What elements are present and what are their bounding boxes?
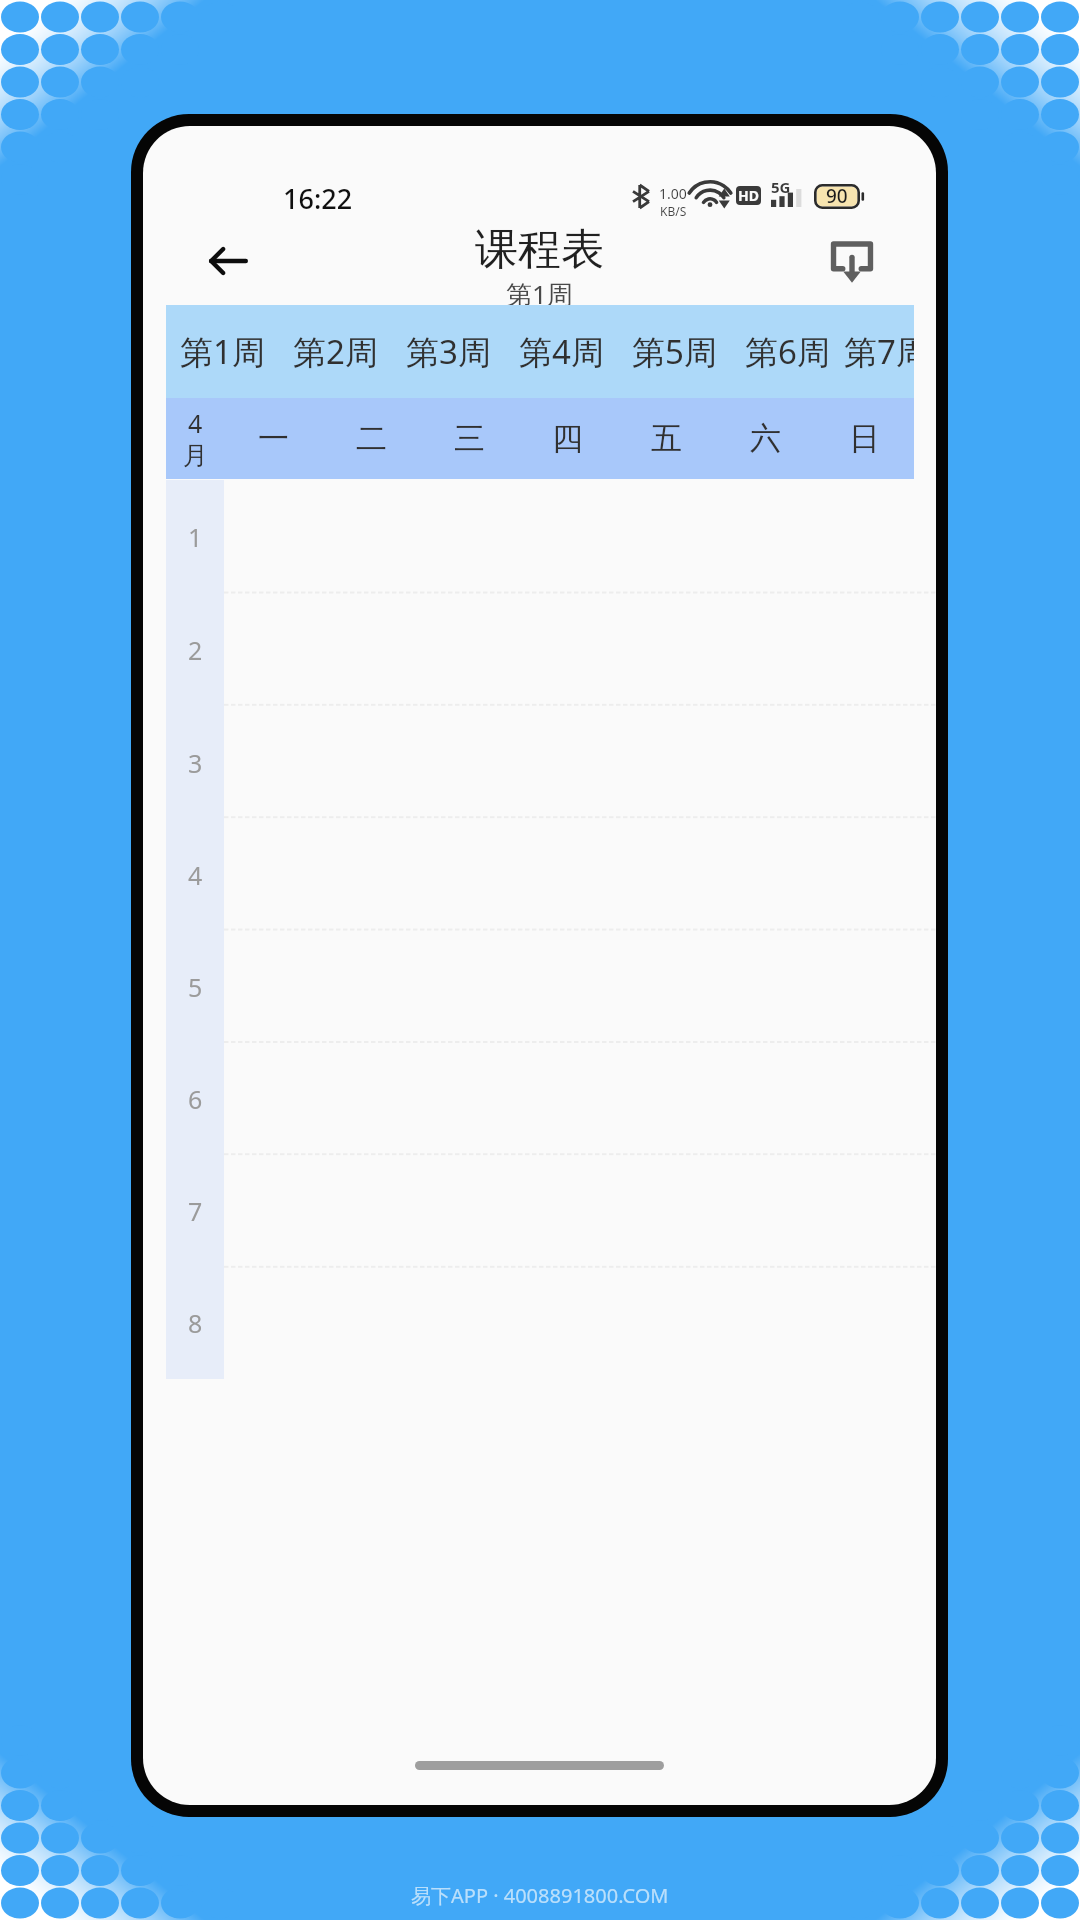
button[interactable]: 第7周 (844, 305, 914, 398)
staticText: 一 (258, 419, 289, 458)
button[interactable]: 二 (322, 398, 420, 479)
staticText: 第5周 (632, 329, 717, 374)
button[interactable]: Back (193, 232, 263, 290)
staticText: 7 (188, 1194, 203, 1228)
button[interactable]: 2 (166, 593, 224, 706)
button[interactable]: 日 (815, 398, 914, 479)
button[interactable]: 五 (617, 398, 716, 479)
staticText: 第1周 (180, 329, 265, 374)
staticText: 课程表 (475, 223, 604, 277)
staticText: 1 (188, 520, 203, 554)
button[interactable]: 四 (518, 398, 617, 479)
button[interactable]: 6 (166, 1043, 224, 1155)
button[interactable]: 1 (166, 480, 224, 593)
button[interactable]: Download (815, 224, 889, 298)
button[interactable]: 5 (166, 931, 224, 1043)
staticText: 第2周 (293, 329, 378, 374)
button[interactable]: 六 (716, 398, 815, 479)
staticText: HD (738, 186, 759, 205)
button[interactable]: 第6周 (731, 305, 844, 398)
staticText: 3 (188, 746, 203, 780)
staticText: 16:22 (283, 180, 353, 217)
button[interactable]: 4 (166, 819, 224, 931)
button[interactable]: 7 (166, 1155, 224, 1267)
staticText: 4 (188, 406, 203, 440)
button[interactable]: 第2周 (279, 305, 392, 398)
button[interactable]: 8 (166, 1267, 224, 1379)
staticText: 五 (651, 419, 682, 458)
button[interactable]: 第5周 (618, 305, 731, 398)
button[interactable]: 第4周 (505, 305, 618, 398)
staticText: 第6周 (745, 329, 830, 374)
staticText: 月 (183, 440, 208, 471)
staticText: 日 (849, 419, 880, 458)
button[interactable]: 一 (224, 398, 322, 479)
staticText: 4 (188, 858, 203, 892)
button[interactable]: 三 (420, 398, 518, 479)
button[interactable]: 3 (166, 706, 224, 819)
staticText: KB/S (660, 203, 687, 219)
button[interactable]: 第3周 (392, 305, 505, 398)
button[interactable]: 第1周 (166, 305, 279, 398)
staticText: 六 (750, 419, 781, 458)
staticText: 二 (356, 419, 387, 458)
staticText: 第4周 (519, 329, 604, 374)
